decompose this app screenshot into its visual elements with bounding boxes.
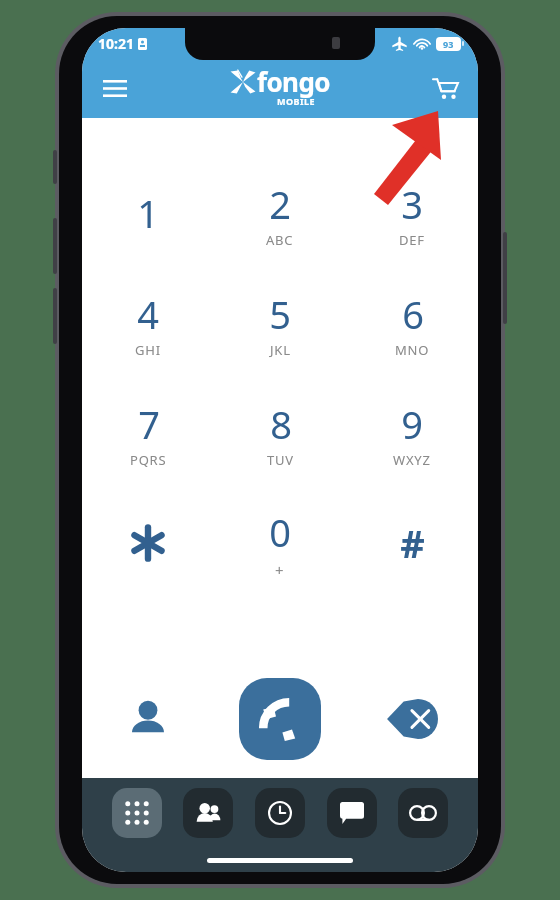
button[interactable]: # <box>346 488 478 598</box>
staticText: MOBILE <box>277 95 316 107</box>
button[interactable]: 5 <box>214 268 346 378</box>
button[interactable]: 3 <box>346 158 478 268</box>
staticText: 7 <box>138 398 160 450</box>
button[interactable]: Voicemail <box>398 788 448 838</box>
button[interactable]: 1 <box>82 158 214 268</box>
staticText: 5 <box>269 288 291 340</box>
button[interactable]: 9 <box>346 378 478 488</box>
staticText: 3 <box>401 178 423 230</box>
staticText: 9 <box>401 398 423 450</box>
button[interactable]: Recents <box>255 788 305 838</box>
staticText: 8 <box>270 398 292 450</box>
button[interactable]: Menu <box>92 65 138 111</box>
staticText: 0 <box>269 506 291 558</box>
button[interactable]: 8 <box>214 378 346 488</box>
button[interactable]: 2 <box>214 158 346 268</box>
staticText: JKL <box>270 341 291 359</box>
staticText: 93 <box>443 38 454 50</box>
staticText: DEF <box>399 231 425 249</box>
button[interactable]: 0 <box>214 488 346 598</box>
staticText: PQRS <box>130 451 167 469</box>
button[interactable] <box>82 488 214 598</box>
staticText: 10:21 <box>98 34 134 53</box>
button[interactable]: Cart <box>422 65 468 111</box>
staticText: MNO <box>395 341 430 359</box>
staticText: 6 <box>402 288 424 340</box>
button[interactable]: Messages <box>327 788 377 838</box>
staticText: 4 <box>137 288 159 340</box>
button[interactable]: Backspace <box>376 683 448 755</box>
staticText: # <box>400 517 425 569</box>
button[interactable]: Call <box>239 678 321 760</box>
button[interactable]: 6 <box>346 268 478 378</box>
button[interactable]: 7 <box>82 378 214 488</box>
button[interactable]: Contacts <box>112 683 184 755</box>
staticText: 1 <box>137 187 159 239</box>
staticText: fongo <box>257 64 330 99</box>
button[interactable]: Dialpad <box>112 788 162 838</box>
button[interactable]: Contacts <box>183 788 233 838</box>
staticText: 2 <box>269 178 291 230</box>
staticText: TUV <box>267 451 294 469</box>
staticText: ABC <box>266 231 294 249</box>
staticText: GHI <box>135 341 161 359</box>
staticText: + <box>275 560 285 580</box>
staticText: WXYZ <box>393 451 431 469</box>
button[interactable]: 4 <box>82 268 214 378</box>
